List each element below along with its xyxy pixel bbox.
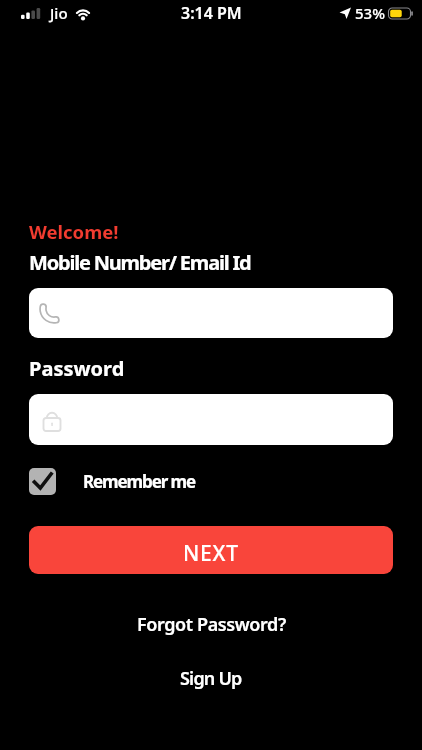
staticText: Password: [29, 355, 125, 382]
button[interactable]: Forgot Password?: [137, 612, 286, 637]
staticText: 3:14 PM: [181, 2, 242, 24]
staticText: Remember me: [83, 470, 196, 493]
button[interactable]: Sign Up: [180, 666, 242, 691]
button[interactable]: NEXT: [29, 526, 393, 574]
staticText: Forgot Password?: [137, 612, 286, 637]
staticText: Mobile Number/ Email Id: [29, 249, 251, 276]
staticText: NEXT: [183, 539, 239, 568]
staticText: Sign Up: [180, 666, 242, 691]
staticText: 53%: [355, 3, 385, 23]
staticText: Welcome!: [29, 219, 119, 244]
button[interactable]: [29, 288, 393, 338]
staticText: Jio: [50, 3, 68, 23]
button[interactable]: [29, 394, 393, 445]
button[interactable]: Remember me: [29, 468, 196, 495]
